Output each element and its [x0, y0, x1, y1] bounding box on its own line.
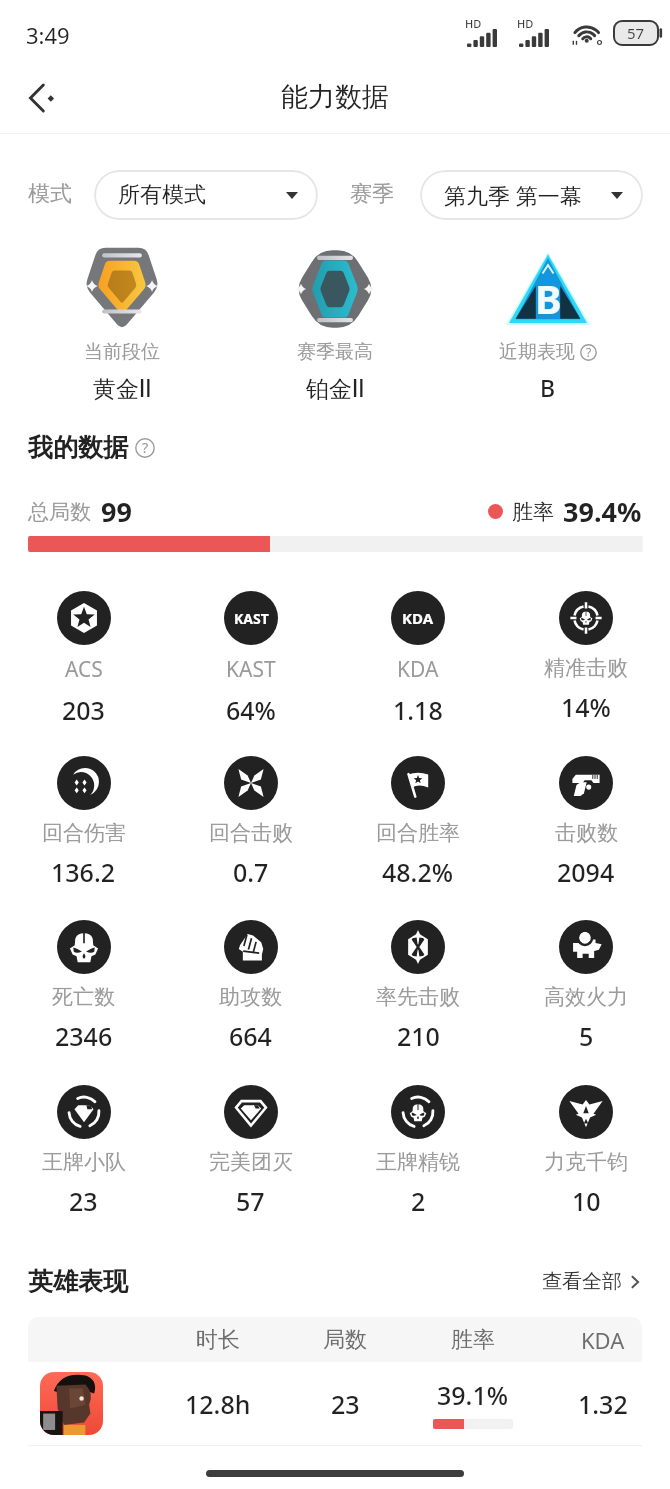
- staticText: 近期表现: [499, 340, 575, 364]
- button[interactable]: Back: [12, 68, 72, 128]
- staticText: 赛季: [350, 180, 394, 208]
- button[interactable]: ACS: [0, 591, 167, 727]
- staticText: 3:49: [26, 20, 70, 50]
- staticText: 210: [397, 1019, 440, 1053]
- button[interactable]: 查看全部: [542, 1269, 642, 1294]
- staticText: 2: [411, 1184, 426, 1218]
- button[interactable]: 率先击败: [334, 920, 502, 1053]
- staticText: 模式: [28, 180, 72, 208]
- staticText: 23: [69, 1184, 98, 1218]
- staticText: HD: [517, 16, 534, 31]
- staticText: 2094: [557, 855, 615, 889]
- button[interactable]: KDA: [334, 591, 502, 727]
- staticText: 回合击败: [209, 820, 293, 846]
- staticText: 英雄表现: [28, 1266, 128, 1297]
- staticText: 高效火力: [544, 984, 628, 1010]
- staticText: 39.4%: [563, 493, 642, 530]
- staticText: 完美团灭: [209, 1149, 293, 1175]
- staticText: 回合伤害: [42, 820, 126, 846]
- button[interactable]: 击败数: [502, 756, 670, 889]
- staticText: 王牌小队: [42, 1149, 126, 1175]
- staticText: 局数: [323, 1326, 367, 1354]
- staticText: 203: [62, 693, 105, 727]
- staticText: 助攻数: [219, 984, 282, 1010]
- staticText: ACS: [65, 655, 103, 684]
- staticText: KDA: [397, 655, 439, 684]
- staticText: 136.2: [51, 855, 116, 889]
- staticText: KAST: [234, 609, 269, 628]
- staticText: 2346: [55, 1019, 113, 1053]
- button[interactable]: 回合胜率: [334, 756, 502, 889]
- button[interactable]: 12.8h: [0, 1362, 670, 1445]
- staticText: 48.2%: [382, 855, 454, 889]
- staticText: 10: [572, 1184, 601, 1218]
- staticText: 第九季 第一幕: [444, 180, 582, 210]
- staticText: 23: [331, 1387, 360, 1421]
- staticText: B: [535, 271, 562, 325]
- button[interactable]: KAST: [167, 591, 334, 727]
- staticText: 赛季最高: [297, 340, 373, 364]
- staticText: 12.8h: [185, 1387, 251, 1421]
- button[interactable]: 死亡数: [0, 920, 167, 1053]
- button[interactable]: 回合击败: [167, 756, 334, 889]
- staticText: 39.1%: [437, 1378, 509, 1412]
- staticText: 57: [627, 23, 645, 43]
- staticText: 王牌精锐: [376, 1149, 460, 1175]
- staticText: ?: [586, 344, 592, 361]
- staticText: 57: [236, 1184, 265, 1218]
- staticText: 精准击败: [544, 655, 628, 681]
- button[interactable]: 高效火力: [502, 920, 670, 1053]
- staticText: 回合胜率: [376, 820, 460, 846]
- staticText: 99: [101, 493, 132, 530]
- staticText: 黄金ll: [93, 372, 152, 403]
- button[interactable]: 力克千钧: [502, 1085, 670, 1218]
- staticText: 率先击败: [376, 984, 460, 1010]
- staticText: 胜率: [451, 1326, 495, 1354]
- staticText: 查看全部: [542, 1269, 622, 1294]
- staticText: HD: [465, 16, 482, 31]
- button[interactable]: 助攻数: [167, 920, 334, 1053]
- button[interactable]: 王牌小队: [0, 1085, 167, 1218]
- staticText: 铂金ll: [306, 372, 365, 403]
- staticText: 死亡数: [52, 984, 115, 1010]
- staticText: 664: [229, 1019, 272, 1053]
- staticText: 14%: [561, 690, 611, 724]
- staticText: 总局数: [28, 499, 91, 525]
- staticText: 能力数据: [281, 80, 389, 114]
- button[interactable]: 所有模式: [94, 170, 318, 220]
- staticText: 我的数据: [28, 432, 128, 463]
- button[interactable]: 精准击败: [502, 591, 670, 724]
- staticText: 所有模式: [118, 181, 206, 209]
- staticText: 64%: [226, 693, 276, 727]
- staticText: KAST: [226, 655, 276, 684]
- staticText: 胜率: [512, 499, 554, 525]
- staticText: 当前段位: [84, 340, 160, 364]
- staticText: 0.7: [233, 855, 269, 889]
- button[interactable]: 第九季 第一幕: [420, 170, 643, 220]
- staticText: 力克千钧: [544, 1149, 628, 1175]
- staticText: 1.32: [578, 1387, 628, 1421]
- staticText: 1.18: [393, 693, 443, 727]
- staticText: ?: [142, 438, 149, 458]
- staticText: 时长: [196, 1326, 240, 1354]
- button[interactable]: 王牌精锐: [334, 1085, 502, 1218]
- staticText: B: [540, 372, 556, 403]
- button[interactable]: 回合伤害: [0, 756, 167, 889]
- button[interactable]: 完美团灭: [167, 1085, 334, 1218]
- staticText: KDA: [581, 1325, 625, 1355]
- staticText: 5: [579, 1019, 594, 1053]
- staticText: 击败数: [555, 820, 618, 846]
- staticText: KDA: [402, 608, 434, 628]
